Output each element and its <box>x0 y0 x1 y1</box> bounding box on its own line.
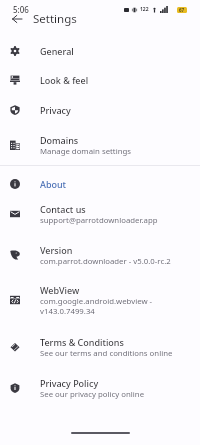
staticText: See our terms and conditions online <box>40 348 173 359</box>
staticText: Contact us <box>40 203 86 215</box>
button[interactable]: About <box>0 169 200 199</box>
staticText: Privacy <box>40 104 71 116</box>
button[interactable]: Privacy Policy <box>0 370 200 406</box>
staticText: General <box>40 45 74 57</box>
staticText: Manage domain settings <box>40 146 132 157</box>
button[interactable]: Contact us <box>0 196 200 232</box>
staticText: 122 <box>140 6 149 13</box>
button[interactable]: Look & feel <box>0 65 200 95</box>
staticText: 67 <box>179 7 185 13</box>
button[interactable]: WebView <box>0 277 200 323</box>
button[interactable]: Back <box>0 8 31 30</box>
staticText: Domains <box>40 134 79 146</box>
staticText: Settings <box>33 11 77 27</box>
staticText: support@parrotdownloader.app <box>40 215 158 226</box>
button[interactable]: Terms & Conditions <box>0 329 200 365</box>
staticText: See our privacy policy online <box>40 389 145 400</box>
staticText: Look & feel <box>40 74 89 86</box>
button[interactable]: Version <box>0 237 200 273</box>
staticText: About <box>40 178 67 190</box>
button[interactable]: General <box>0 36 200 66</box>
staticText: WebView <box>40 284 80 296</box>
staticText: com.parrot.downloader - v5.0.0-rc.2 <box>40 256 171 267</box>
staticText: 5:06 <box>13 4 29 15</box>
staticText: Version <box>40 244 73 256</box>
button[interactable]: Domains <box>0 127 200 163</box>
button[interactable]: Privacy <box>0 95 200 125</box>
staticText: com.google.android.webview - v143.0.7499… <box>40 296 177 316</box>
staticText: Privacy Policy <box>40 377 99 389</box>
staticText: Terms & Conditions <box>40 336 124 348</box>
